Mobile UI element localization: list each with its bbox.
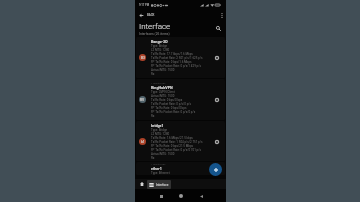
- staticText: Bango-3D: [151, 39, 168, 44]
- button[interactable]: Interface settings: [209, 94, 225, 105]
- staticText: 1 minute ago: [151, 81, 166, 85]
- staticText: ether1: [151, 166, 162, 171]
- staticText: bridge1: [151, 123, 164, 128]
- button[interactable]: b1: [136, 121, 225, 161]
- button[interactable]: Home: [138, 180, 146, 188]
- button[interactable]: Interface settings: [209, 136, 225, 147]
- staticText: Interfaces (26 items): [139, 31, 170, 36]
- staticText: B3: [141, 56, 145, 60]
- staticText: RV: [140, 98, 145, 102]
- button[interactable]: Add interface: [209, 163, 222, 176]
- staticText: Interface: [139, 20, 171, 31]
- staticText: 9:17 PM: [139, 3, 150, 7]
- button[interactable]: 1 minute ago: [136, 162, 225, 175]
- button[interactable]: Recent apps: [158, 193, 164, 199]
- button[interactable]: Interface: [147, 180, 171, 189]
- staticText: Type: Bridge L2 MTU: 1280 Tx/Rx Rate: 17…: [151, 44, 203, 76]
- button[interactable]: Home: [178, 193, 184, 199]
- staticText: Type: Ethernet: [151, 171, 170, 175]
- button[interactable]: Search: [213, 23, 223, 33]
- staticText: BACK: [147, 13, 155, 17]
- staticText: Interface: [156, 183, 169, 187]
- button[interactable]: Interface settings: [209, 52, 225, 63]
- button[interactable]: More options: [218, 10, 226, 20]
- button[interactable]: Back: [198, 193, 204, 199]
- staticText: b1: [141, 140, 145, 144]
- staticText: Type: Bridge L2 MTU: 1280 Tx/Rx Rate: 1.…: [151, 128, 203, 160]
- staticText: Type: OVPN Client Actual MTU: 1500 Tx/Rx…: [151, 90, 196, 118]
- staticText: RingHubVPN: [151, 85, 173, 90]
- staticText: 1 minute ago: [151, 162, 166, 166]
- button[interactable]: BACK: [135, 10, 159, 20]
- button[interactable]: RV: [136, 79, 225, 120]
- button[interactable]: B3: [136, 37, 225, 78]
